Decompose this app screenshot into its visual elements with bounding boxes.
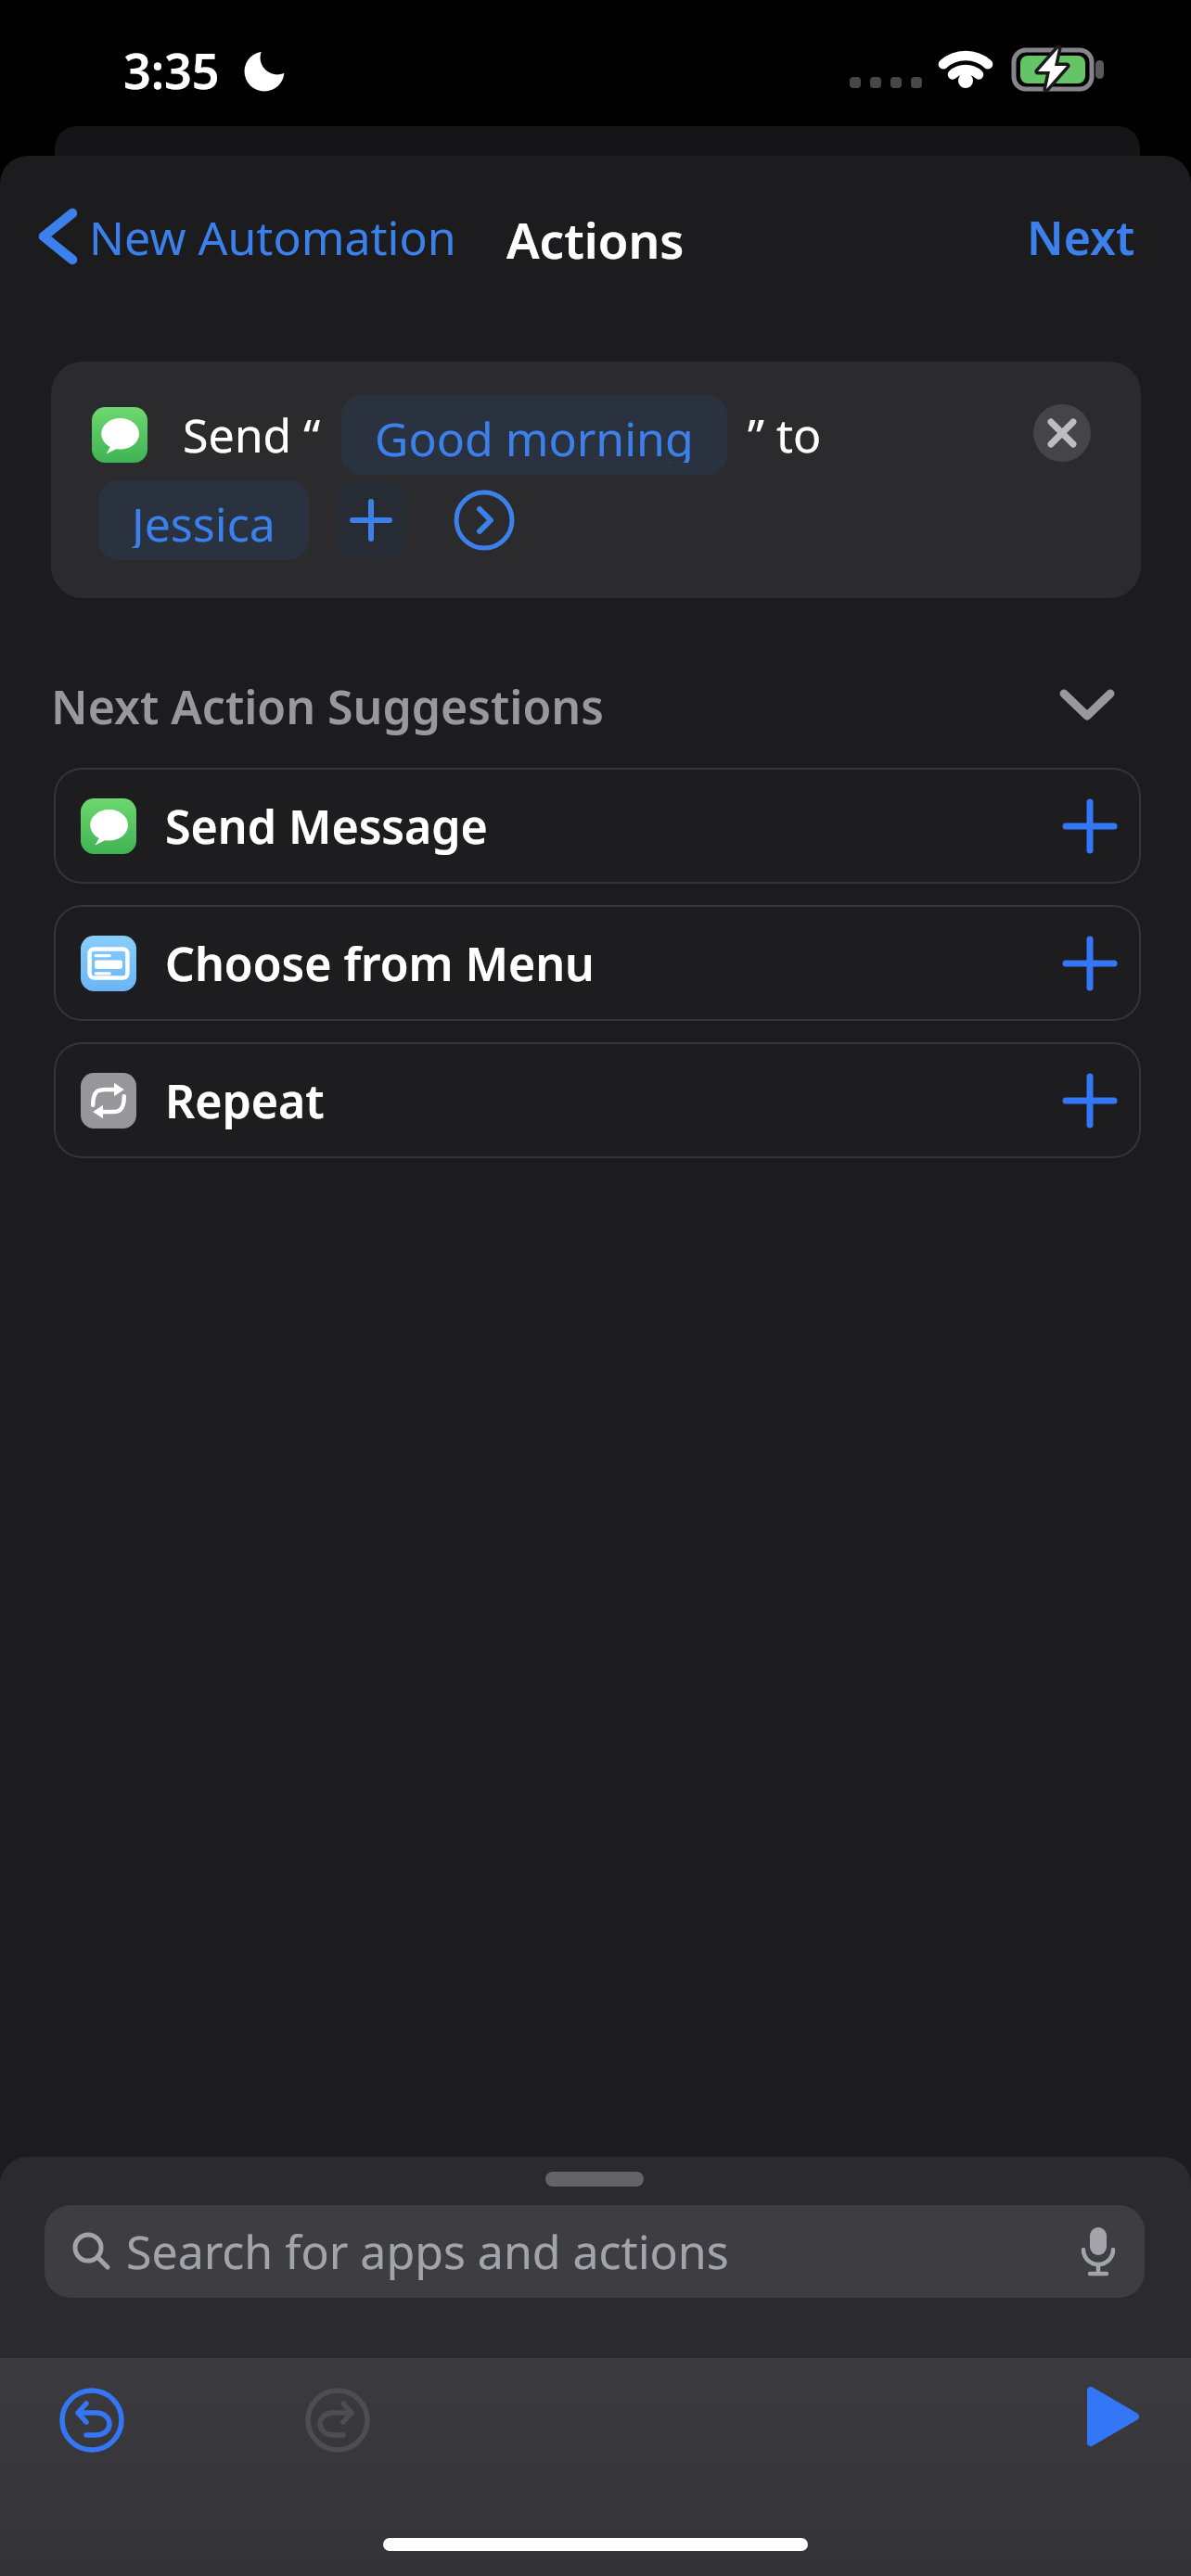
staticText: Actions: [506, 206, 685, 267]
staticText: Good morning: [375, 407, 694, 463]
button[interactable]: [454, 490, 515, 551]
staticText: Choose from Menu: [165, 932, 595, 995]
button[interactable]: [1033, 404, 1091, 462]
button[interactable]: [1083, 2389, 1141, 2452]
button[interactable]: [337, 481, 405, 559]
staticText: Send Message: [165, 795, 488, 858]
button[interactable]: Next: [950, 206, 1135, 267]
button[interactable]: [32, 206, 83, 267]
staticText: New Automation: [89, 206, 456, 267]
staticText: ” to: [748, 403, 822, 466]
staticText: Search for apps and actions: [126, 2220, 729, 2283]
button[interactable]: [1059, 682, 1115, 729]
button[interactable]: Send Message: [54, 768, 1141, 884]
button[interactable]: Send “: [51, 362, 1141, 598]
button[interactable]: New Automation: [89, 206, 456, 267]
staticText: Next Action Suggestions: [51, 675, 604, 736]
staticText: 3:35: [123, 37, 220, 96]
staticText: Repeat: [165, 1069, 325, 1132]
button[interactable]: Repeat: [54, 1042, 1141, 1158]
staticText: Next: [1027, 206, 1135, 267]
staticText: Jessica: [132, 492, 275, 548]
button[interactable]: [58, 2387, 125, 2454]
staticText: Send “: [183, 403, 321, 466]
button[interactable]: Choose from Menu: [54, 905, 1141, 1021]
button[interactable]: [304, 2387, 371, 2454]
button[interactable]: Search for apps and actions: [45, 2205, 1145, 2298]
